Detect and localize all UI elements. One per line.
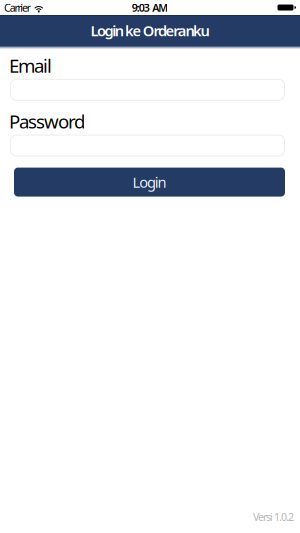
staticText: Login (132, 172, 167, 192)
staticText: Password (9, 109, 85, 134)
staticText: Login ke Orderanku (90, 21, 210, 40)
staticText: 9:03 (132, 0, 150, 15)
button[interactable]: Email (0, 79, 300, 101)
staticText: AM (152, 0, 168, 15)
staticText: Versi 1.0.2 (253, 510, 294, 524)
staticText: Carrier (4, 0, 31, 15)
staticText: Email (9, 53, 52, 78)
button[interactable]: Login (0, 168, 300, 197)
button[interactable]: Password (0, 135, 300, 157)
